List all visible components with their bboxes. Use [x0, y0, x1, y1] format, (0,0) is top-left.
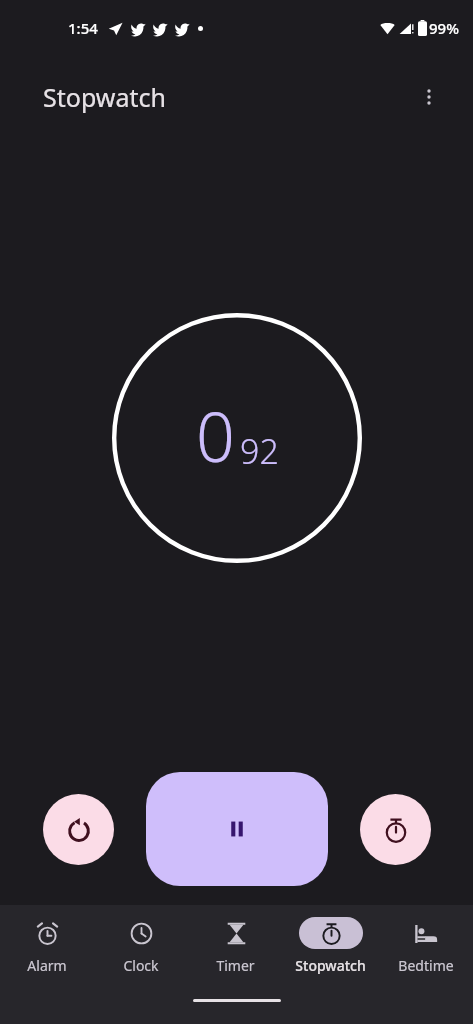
button[interactable]: More options	[411, 79, 447, 115]
staticText: Alarm	[27, 956, 67, 975]
staticText: Bedtime	[398, 956, 454, 975]
button[interactable]: Pause	[146, 772, 328, 886]
staticText: Clock	[123, 956, 159, 975]
staticText: 92	[240, 428, 279, 474]
staticText: 1:54	[68, 18, 98, 38]
staticText: 99%	[429, 18, 459, 38]
button[interactable]: Timer	[188, 905, 283, 975]
button[interactable]: Lap	[360, 794, 431, 865]
staticText: Timer	[216, 956, 255, 975]
staticText: Stopwatch	[43, 80, 166, 114]
button[interactable]: Alarm	[0, 905, 94, 975]
button[interactable]: Clock	[94, 905, 188, 975]
button[interactable]: Bedtime	[378, 905, 473, 975]
button[interactable]: Stopwatch	[283, 905, 378, 975]
staticText: Stopwatch	[295, 956, 366, 975]
button[interactable]: Reset	[43, 794, 114, 865]
staticText: 0	[196, 389, 235, 482]
